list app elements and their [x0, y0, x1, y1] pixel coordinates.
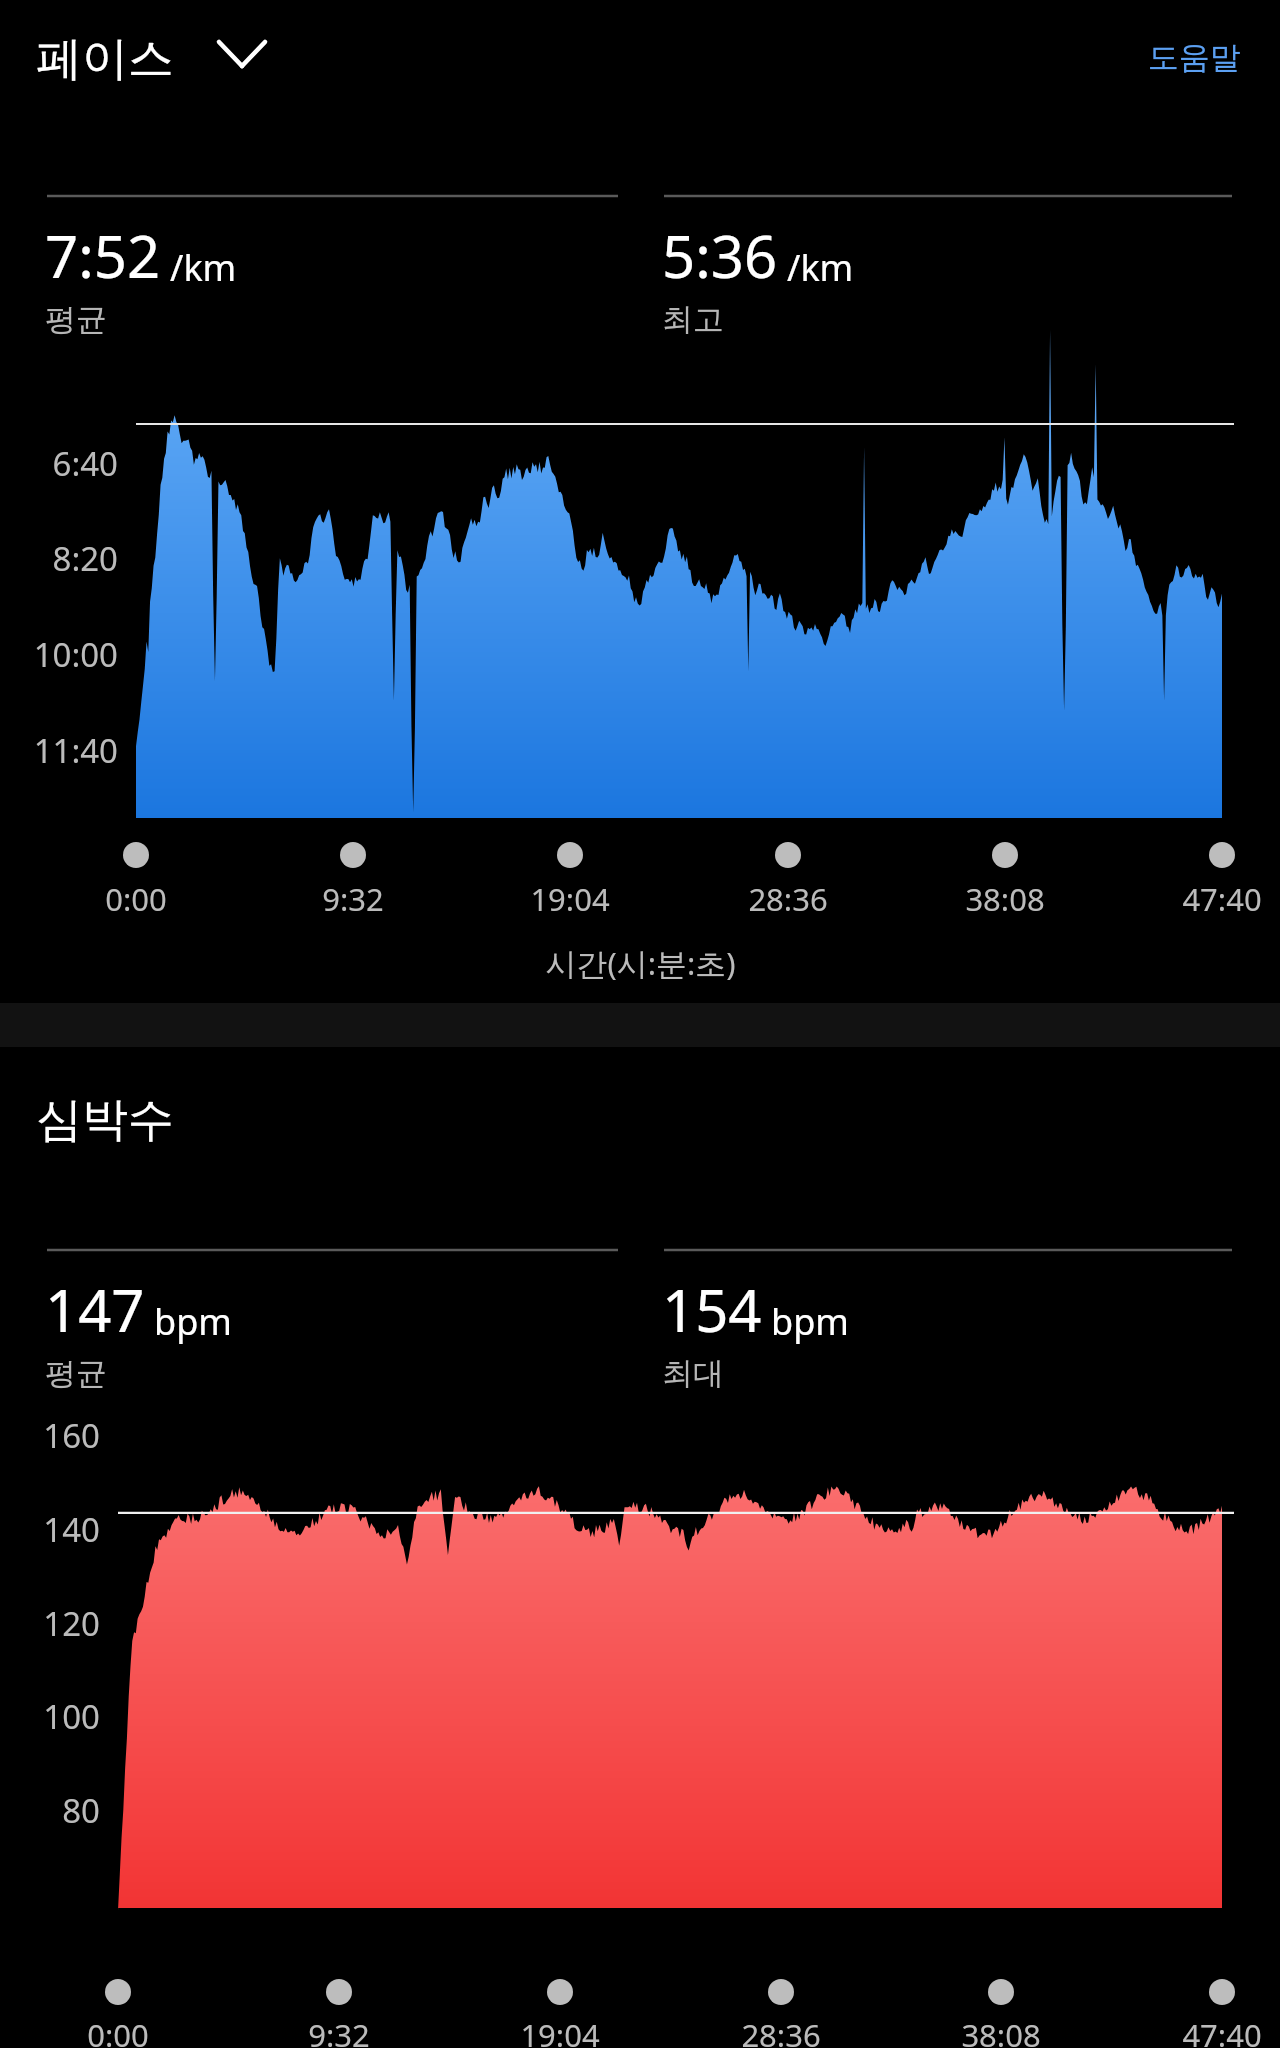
staticText: 28:36: [748, 878, 828, 920]
staticText: 19:04: [520, 2014, 600, 2048]
staticText: 11:40: [33, 728, 118, 773]
staticText: /km: [170, 243, 237, 292]
staticText: 154: [662, 1270, 762, 1349]
staticText: 9:32: [322, 878, 384, 920]
staticText: 80: [62, 1788, 100, 1833]
staticText: 도움말: [1148, 38, 1241, 77]
staticText: bpm: [771, 1297, 849, 1346]
staticText: 160: [43, 1413, 100, 1458]
staticText: 38:08: [965, 878, 1045, 920]
staticText: 9:32: [308, 2014, 370, 2048]
button[interactable]: 페이스 측정 항목 선택: [30, 26, 236, 92]
staticText: 시간(시:분:초): [545, 942, 736, 984]
staticText: 38:08: [961, 2014, 1041, 2048]
staticText: 47:40: [1182, 2014, 1262, 2048]
staticText: 8:20: [52, 536, 118, 581]
staticText: 140: [43, 1507, 100, 1552]
staticText: 0:00: [105, 878, 167, 920]
button[interactable]: 도움말: [1142, 32, 1247, 83]
staticText: 147: [45, 1270, 145, 1349]
button[interactable]: 심박수: [30, 1085, 180, 1155]
staticText: 6:40: [52, 441, 118, 486]
staticText: 120: [43, 1601, 100, 1646]
staticText: 7:52: [45, 216, 161, 295]
staticText: 10:00: [33, 632, 118, 677]
staticText: 최고: [662, 300, 724, 339]
staticText: 5:36: [662, 216, 778, 295]
staticText: 47:40: [1182, 878, 1262, 920]
staticText: 페이스: [36, 30, 174, 88]
staticText: 최대: [662, 1354, 724, 1393]
staticText: 0:00: [87, 2014, 149, 2048]
staticText: /km: [787, 243, 854, 292]
staticText: 평균: [45, 1354, 107, 1393]
staticText: 평균: [45, 300, 107, 339]
staticText: 28:36: [741, 2014, 821, 2048]
staticText: 19:04: [530, 878, 610, 920]
staticText: 100: [43, 1694, 100, 1739]
staticText: bpm: [154, 1297, 232, 1346]
staticText: 심박수: [36, 1091, 174, 1149]
